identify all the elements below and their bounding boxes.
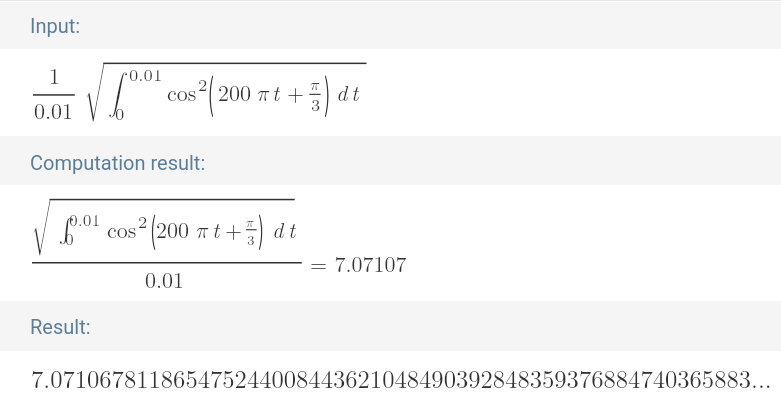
staticText: 0.01 <box>145 263 185 294</box>
staticText: t <box>212 213 220 244</box>
staticText: d <box>272 213 284 244</box>
staticText: 7.07106781186547524400844362104849039284… <box>31 360 772 394</box>
staticText: t <box>351 76 359 107</box>
staticText: 3 <box>247 230 255 249</box>
staticText: 𝜋 <box>196 220 209 242</box>
staticText: cos <box>107 213 137 244</box>
staticText: 0.01 <box>129 63 163 86</box>
staticText: Result: <box>30 315 91 338</box>
staticText: + <box>287 76 305 107</box>
staticText: 𝜋 <box>310 77 320 93</box>
staticText: 2 <box>138 210 148 233</box>
staticText: Computation result: <box>30 151 206 174</box>
staticText: 𝜋 <box>246 216 254 229</box>
staticText: 3 <box>311 93 321 116</box>
staticText: 0 <box>65 228 74 250</box>
staticText: 𝜋 <box>257 83 270 105</box>
staticText: 2 <box>198 73 208 96</box>
staticText: + <box>225 213 243 244</box>
staticText: cos <box>167 76 197 107</box>
staticText: Input: <box>30 14 81 37</box>
staticText: = 7.07107 <box>310 247 407 278</box>
staticText: d <box>336 76 348 107</box>
staticText: 200 <box>218 76 252 107</box>
staticText: t <box>288 213 296 244</box>
staticText: 0.01 <box>69 209 101 231</box>
staticText: 200 <box>156 213 190 244</box>
staticText: t <box>272 76 280 107</box>
staticText: 0 <box>115 102 125 125</box>
staticText: 0.01 <box>34 94 74 125</box>
staticText: 1 <box>49 59 61 90</box>
